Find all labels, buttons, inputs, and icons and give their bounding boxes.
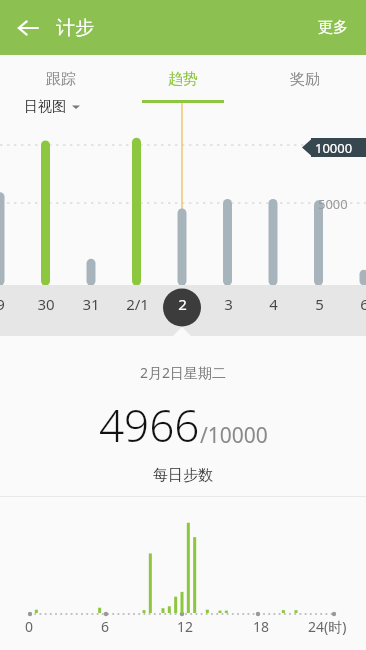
staticText: 2 [178, 294, 187, 314]
button[interactable]: 9 [0, 285, 23, 323]
staticText: 12 [177, 617, 194, 636]
staticText: 4966 [99, 395, 200, 455]
button[interactable]: 跟踪 [0, 55, 122, 103]
button[interactable]: 2/1 [114, 285, 160, 323]
button[interactable]: 5 [296, 285, 342, 323]
staticText: 31 [82, 294, 100, 314]
staticText: 3 [224, 294, 233, 314]
staticText: 9 [0, 294, 5, 314]
staticText: /10000 [200, 421, 268, 450]
button[interactable]: Back [6, 6, 50, 50]
button[interactable]: 2 [159, 285, 205, 323]
staticText: 24(时) [308, 617, 347, 636]
staticText: 4 [269, 294, 278, 314]
staticText: 5000 [318, 195, 348, 213]
button[interactable]: 趋势 [122, 55, 244, 103]
button[interactable]: 6 [341, 285, 366, 323]
staticText: 每日步数 [153, 466, 213, 485]
staticText: 6 [101, 617, 110, 636]
staticText: 18 [253, 617, 270, 636]
button[interactable]: 4 [250, 285, 296, 323]
button[interactable]: 计步 [52, 12, 98, 44]
button[interactable]: 3 [205, 285, 251, 323]
staticText: 30 [37, 294, 55, 314]
staticText: 计步 [56, 16, 94, 40]
button[interactable]: 31 [68, 285, 114, 323]
staticText: 2/1 [126, 294, 149, 314]
staticText: 2月2日星期二 [140, 363, 227, 382]
staticText: 6 [360, 294, 366, 314]
staticText: 趋势 [168, 70, 198, 89]
button[interactable]: 日视图 [22, 96, 82, 118]
staticText: 10000 [315, 139, 353, 157]
staticText: 奖励 [290, 70, 320, 89]
staticText: 跟踪 [46, 70, 76, 89]
button[interactable]: 更多 [312, 8, 354, 47]
staticText: 5 [315, 294, 324, 314]
staticText: 更多 [318, 18, 348, 37]
button[interactable]: 奖励 [244, 55, 366, 103]
button[interactable]: 30 [23, 285, 69, 323]
staticText: 日视图 [24, 98, 66, 116]
staticText: 0 [25, 617, 34, 636]
